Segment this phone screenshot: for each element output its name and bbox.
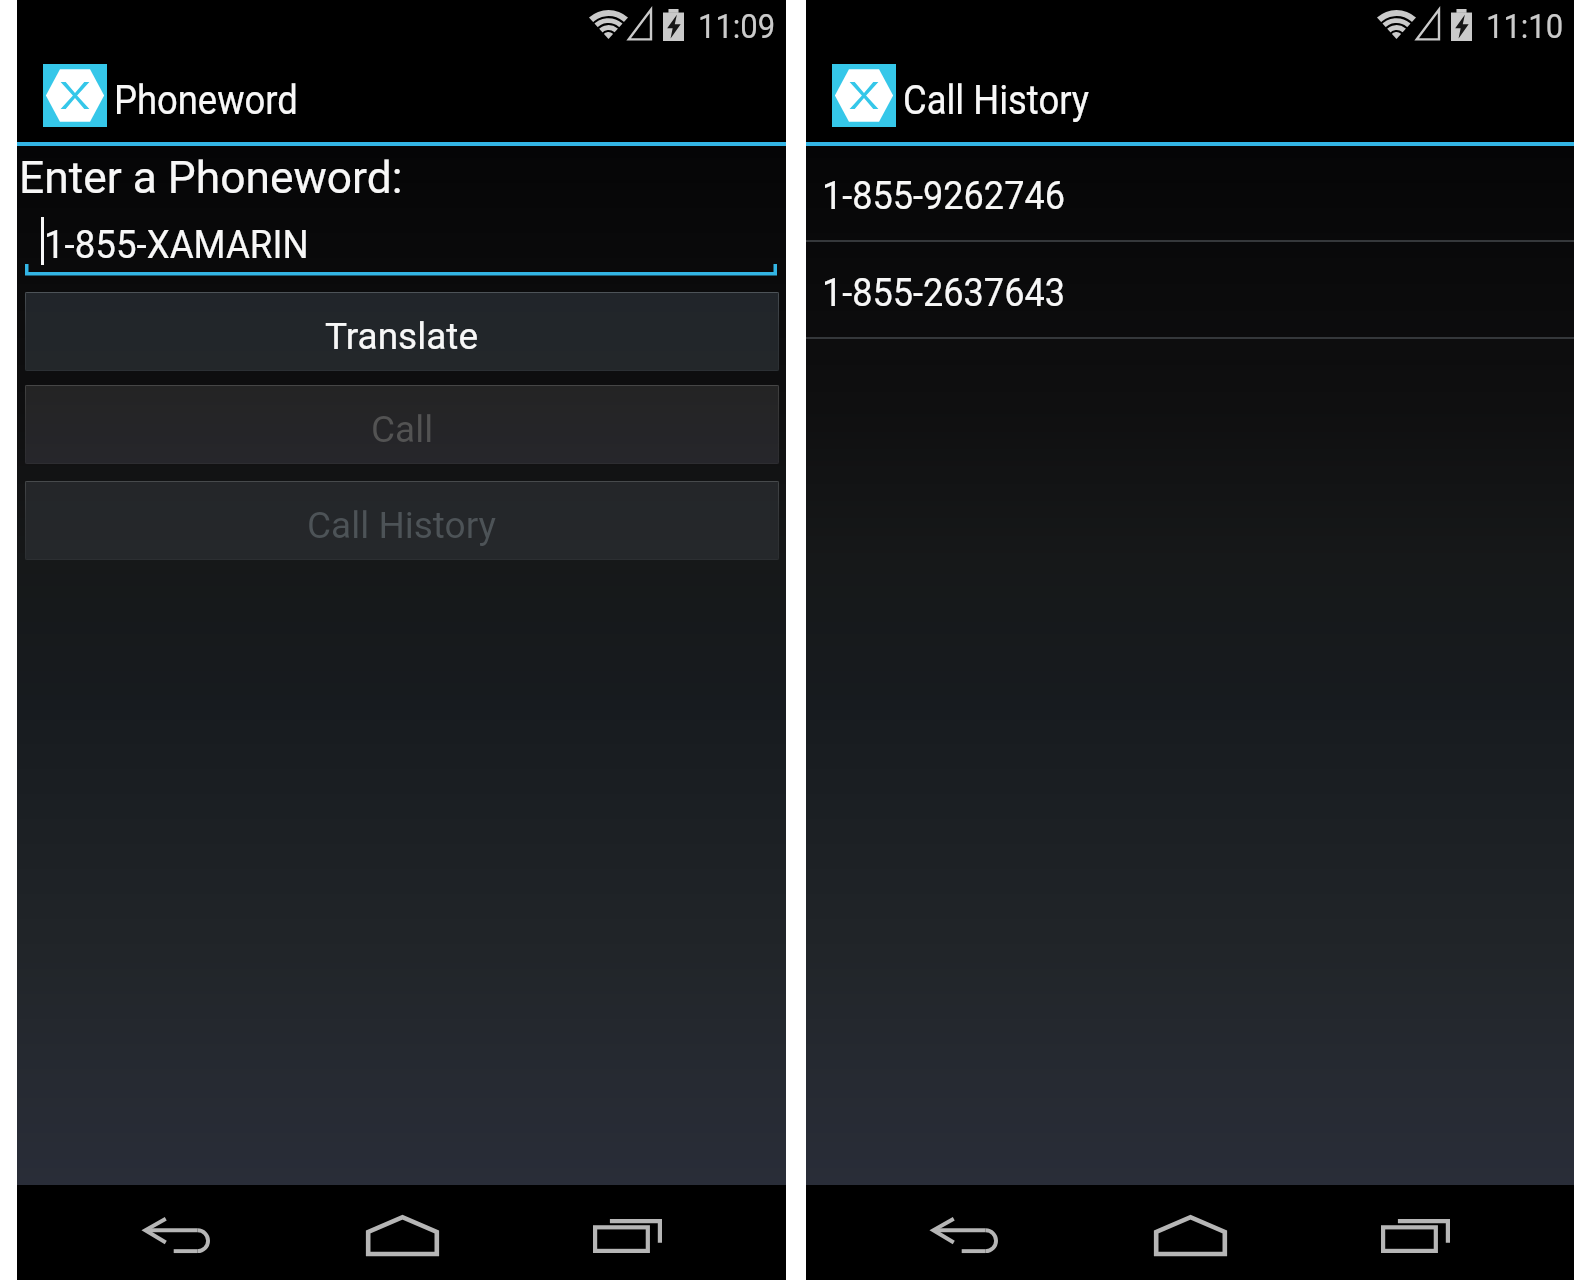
staticText: 11:10 — [1486, 7, 1564, 46]
staticText: Enter a Phoneword: — [19, 151, 403, 204]
button[interactable]: Translate — [25, 292, 779, 371]
button[interactable]: Phoneword — [17, 49, 340, 142]
button[interactable]: Home — [1111, 1188, 1269, 1280]
button[interactable]: Call History — [806, 49, 1132, 142]
staticText: 1-855-9262746 — [822, 173, 1065, 219]
button[interactable]: 1-855-9262746 — [806, 146, 1574, 240]
button[interactable]: Recent apps — [1336, 1188, 1494, 1280]
staticText: Call — [371, 408, 434, 451]
staticText: Phoneword — [114, 77, 298, 124]
button[interactable]: 1-855-2637643 — [806, 242, 1574, 337]
button[interactable]: Call — [25, 385, 779, 464]
staticText: Call History — [307, 504, 497, 547]
button[interactable]: Call History — [25, 481, 779, 560]
button[interactable]: Recent apps — [548, 1188, 706, 1280]
staticText: 1-855-XAMARIN — [44, 223, 309, 268]
staticText: Call History — [903, 77, 1090, 124]
button[interactable]: Back — [886, 1188, 1044, 1280]
staticText: 11:09 — [698, 7, 776, 46]
button[interactable]: Home — [323, 1188, 481, 1280]
staticText: Translate — [325, 315, 479, 358]
button[interactable]: 1-855-XAMARIN — [25, 214, 777, 276]
button[interactable]: Back — [98, 1188, 256, 1280]
staticText: 1-855-2637643 — [822, 270, 1065, 316]
